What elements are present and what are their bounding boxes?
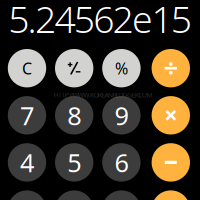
staticText: C xyxy=(22,58,32,79)
staticText: 4 xyxy=(20,146,34,179)
staticText: 8 xyxy=(67,98,81,132)
button[interactable]: Subtract xyxy=(152,143,190,182)
button[interactable]: 4 xyxy=(8,143,46,182)
staticText: 7 xyxy=(20,98,34,132)
button[interactable]: 2 xyxy=(55,190,93,200)
button[interactable]: 6 xyxy=(102,143,141,182)
button[interactable]: 8 xyxy=(55,96,93,134)
button[interactable]: 5 xyxy=(55,143,93,182)
button[interactable]: Divide xyxy=(152,49,190,87)
button[interactable]: 9 xyxy=(102,96,141,134)
staticText: 5.24562e15 xyxy=(8,0,192,43)
button[interactable]: % xyxy=(102,49,141,87)
button[interactable]: Plus minus xyxy=(55,49,93,87)
staticText: % xyxy=(115,58,128,79)
button[interactable]: 7 xyxy=(8,96,46,134)
button[interactable]: Multiply xyxy=(152,96,190,134)
staticText: 5 xyxy=(67,146,81,179)
button[interactable]: C xyxy=(8,49,46,87)
staticText: 6 xyxy=(114,146,128,179)
staticText: HTTP://WWW.KOREANBLOGGER.COM xyxy=(54,91,152,99)
button[interactable]: Add xyxy=(152,190,190,200)
button[interactable]: 3 xyxy=(102,190,141,200)
staticText: 9 xyxy=(114,98,128,132)
button[interactable]: 1 xyxy=(8,190,46,200)
